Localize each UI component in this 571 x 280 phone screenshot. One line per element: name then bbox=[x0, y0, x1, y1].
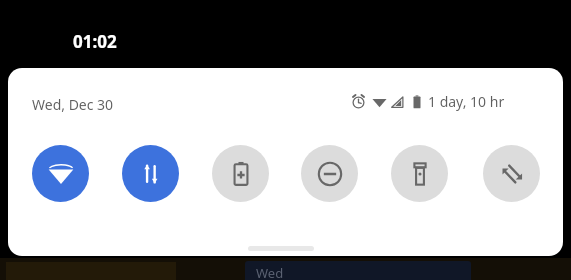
other: Mobile signal bbox=[390, 95, 404, 109]
button[interactable]: Mobile data bbox=[122, 145, 179, 202]
other: Wi-Fi connected bbox=[372, 94, 387, 109]
other: Alarm set bbox=[351, 94, 366, 109]
button[interactable]: Auto-rotate bbox=[483, 145, 540, 202]
button[interactable]: Flashlight bbox=[391, 145, 448, 202]
staticText: 1 day, 10 hr bbox=[428, 92, 505, 111]
staticText: 01:02 bbox=[73, 30, 117, 53]
button[interactable]: Do Not Disturb bbox=[301, 145, 358, 202]
other: Battery bbox=[410, 95, 424, 109]
button[interactable]: Wed, Dec 30 bbox=[32, 95, 114, 114]
button[interactable]: Battery Saver bbox=[212, 145, 269, 202]
staticText: Wed bbox=[256, 264, 284, 280]
button[interactable]: Wi-Fi bbox=[32, 145, 89, 202]
